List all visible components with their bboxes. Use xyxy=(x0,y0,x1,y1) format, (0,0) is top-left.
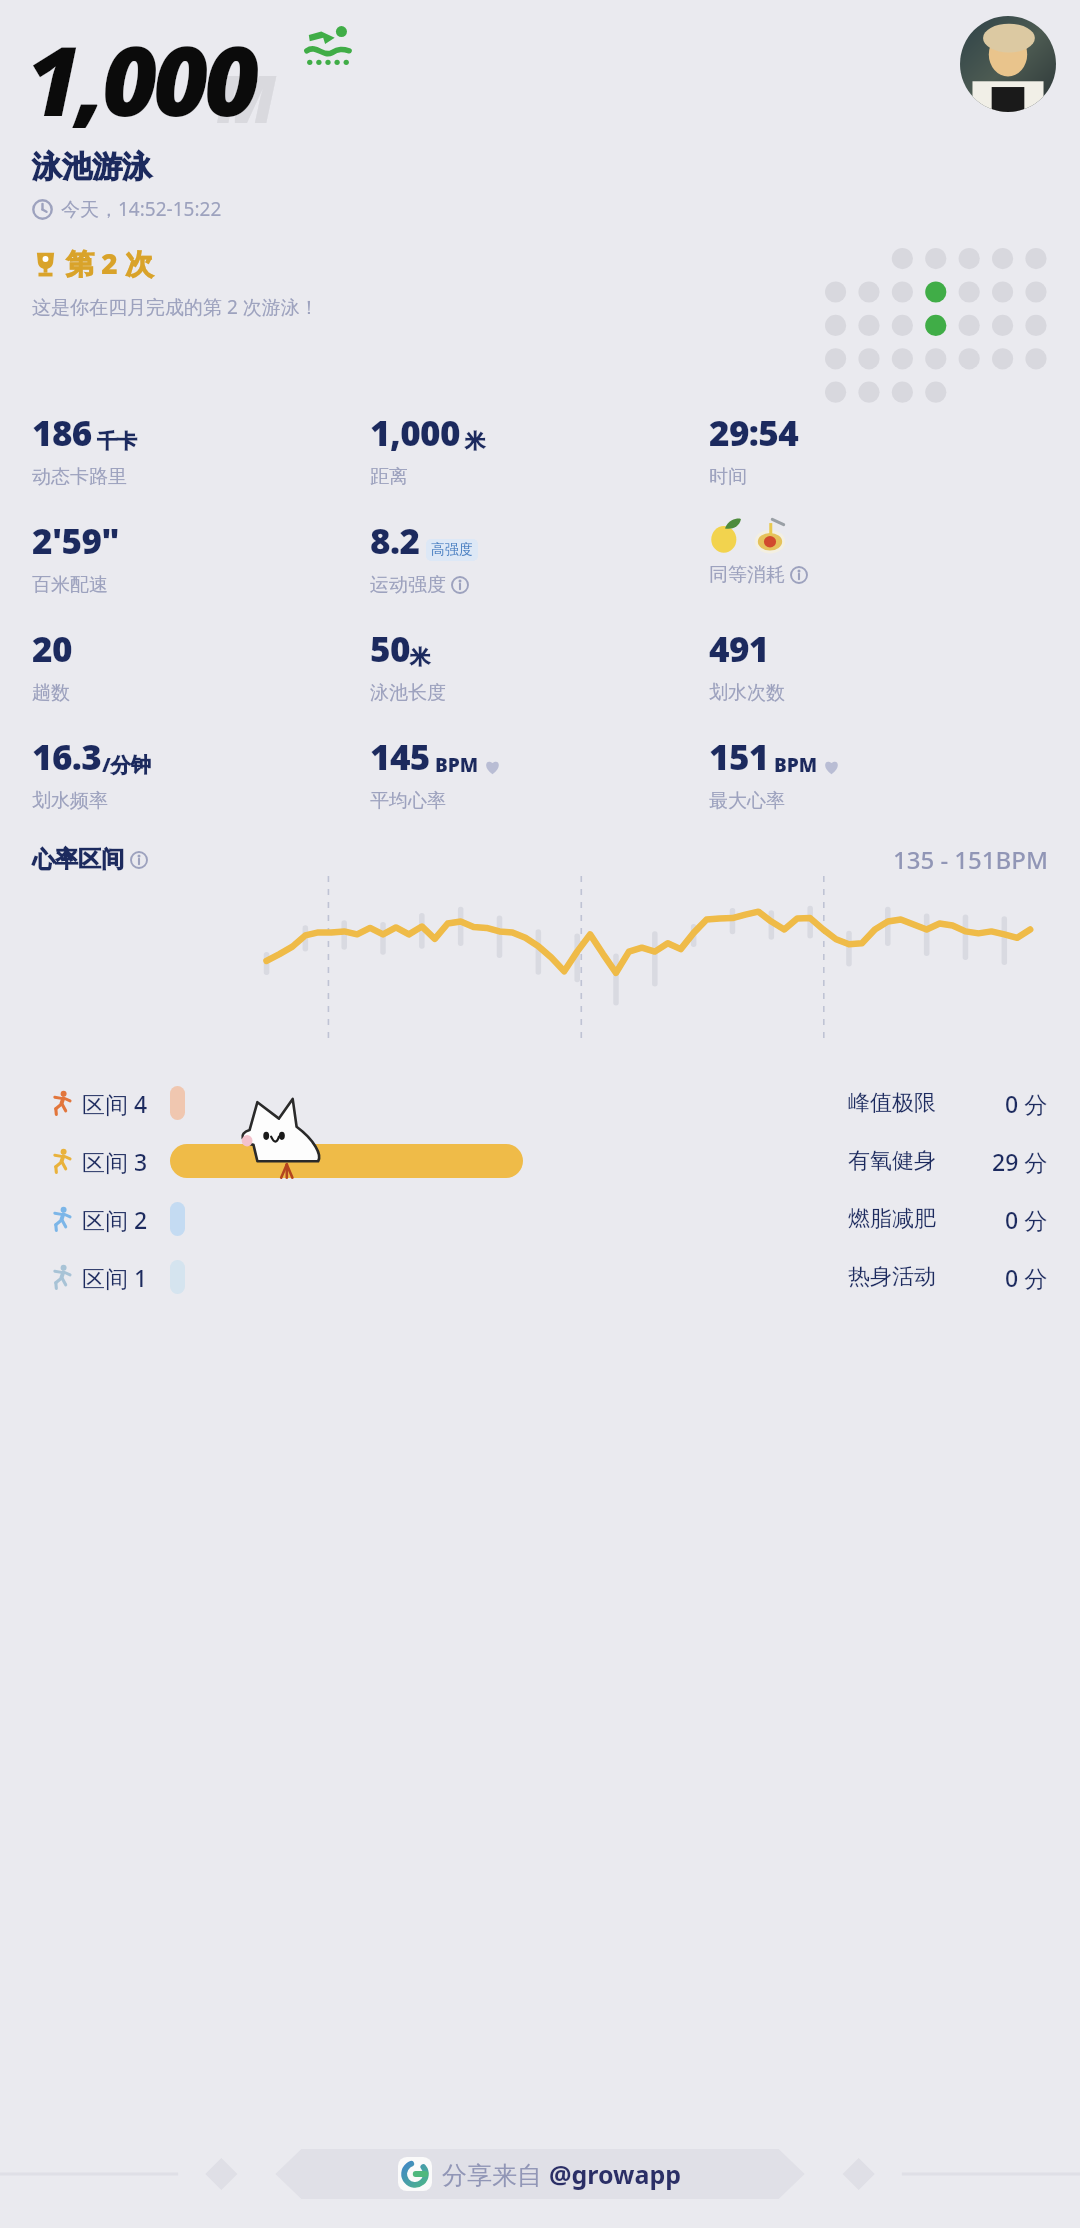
staticText: 泳池长度 xyxy=(370,681,446,705)
staticText: 区间 1 xyxy=(82,1262,148,1293)
staticText: 同等消耗 xyxy=(709,563,785,587)
other: Info xyxy=(451,576,469,594)
staticText: 29 分 xyxy=(992,1146,1048,1177)
button[interactable]: 8.2 xyxy=(370,517,478,597)
staticText: 145 xyxy=(370,733,430,781)
button[interactable]: 491 xyxy=(709,625,785,705)
staticText: @growapp xyxy=(549,2157,682,2191)
button[interactable]: 区间 2 xyxy=(0,1196,1080,1242)
button[interactable]: Profile avatar xyxy=(960,16,1056,112)
staticText: /分钟 xyxy=(102,751,151,778)
staticText: 今天，14:52-15:22 xyxy=(61,196,222,222)
staticText: 米 xyxy=(410,645,430,670)
button[interactable]: 145 xyxy=(370,733,501,813)
staticText: 动态卡路里 xyxy=(32,465,127,489)
staticText: 区间 3 xyxy=(82,1146,148,1177)
button[interactable]: 16.3 xyxy=(32,733,151,813)
staticText: 29:54 xyxy=(709,409,799,457)
staticText: 区间 4 xyxy=(82,1088,148,1119)
staticText: 峰值极限 xyxy=(848,1089,936,1117)
staticText: 0 分 xyxy=(1005,1088,1048,1119)
staticText: 分享来自 xyxy=(442,2157,549,2191)
staticText: 划水次数 xyxy=(709,681,785,705)
staticText: 2'59" xyxy=(32,517,120,565)
staticText: M xyxy=(216,52,276,142)
staticText: 0 分 xyxy=(1005,1262,1048,1293)
staticText: 16.3 xyxy=(32,733,102,781)
button[interactable]: 区间 3 xyxy=(0,1138,1080,1184)
staticText: BPM xyxy=(774,752,818,778)
staticText: 1,000 xyxy=(26,14,256,143)
staticText: 50 xyxy=(370,625,410,673)
staticText: 燃脂减肥 xyxy=(848,1205,936,1233)
staticText: 186 xyxy=(32,409,92,457)
button[interactable]: 区间 1 xyxy=(0,1254,1080,1300)
staticText: 热身活动 xyxy=(848,1263,936,1291)
staticText: 米 xyxy=(465,429,485,454)
staticText: 最大心率 xyxy=(709,789,785,813)
staticText: 有氧健身 xyxy=(848,1147,936,1175)
other: Info xyxy=(790,566,808,584)
button[interactable]: 186 xyxy=(32,409,137,489)
staticText: 时间 xyxy=(709,465,747,489)
staticText: 0 分 xyxy=(1005,1204,1048,1235)
staticText: 151 xyxy=(709,733,769,781)
staticText: 泳池游泳 xyxy=(32,148,152,186)
staticText: 8.2 xyxy=(370,517,420,565)
staticText: 区间 2 xyxy=(82,1204,148,1235)
staticText: 心率区间 xyxy=(32,845,124,874)
button[interactable]: 2'59" xyxy=(32,517,120,597)
staticText: 高强度 xyxy=(431,541,473,559)
staticText: 千卡 xyxy=(97,429,137,454)
button[interactable]: 同等消耗 xyxy=(709,517,808,587)
staticText: 20 xyxy=(32,625,72,673)
staticText: 趟数 xyxy=(32,681,70,705)
staticText: 1,000 xyxy=(370,409,460,457)
staticText: 135 - 151BPM xyxy=(893,843,1048,876)
button[interactable]: 20 xyxy=(32,625,72,705)
button[interactable]: 1,000 xyxy=(370,409,485,489)
staticText: BPM xyxy=(435,752,479,778)
staticText: 划水频率 xyxy=(32,789,108,813)
staticText: 距离 xyxy=(370,465,408,489)
button[interactable]: 151 xyxy=(709,733,840,813)
staticText: 平均心率 xyxy=(370,789,446,813)
button[interactable]: 分享来自 xyxy=(384,2149,696,2199)
other: Info xyxy=(130,851,148,869)
staticText: 491 xyxy=(709,625,769,673)
staticText: 运动强度 xyxy=(370,573,446,597)
staticText: 第 2 次 xyxy=(66,244,153,282)
button[interactable]: 区间 4 xyxy=(0,1080,1080,1126)
button[interactable]: 50 xyxy=(370,625,446,705)
staticText: 这是你在四月完成的第 2 次游泳！ xyxy=(32,294,319,320)
button[interactable]: 29:54 xyxy=(709,409,799,489)
staticText: 百米配速 xyxy=(32,573,108,597)
